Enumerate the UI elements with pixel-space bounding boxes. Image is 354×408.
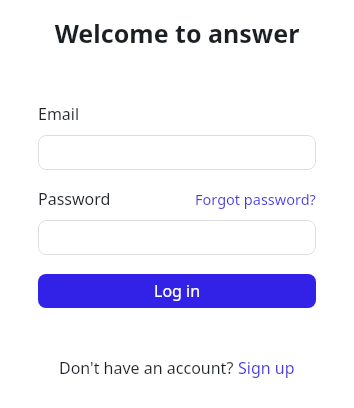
button[interactable]: Log in — [38, 274, 316, 308]
button[interactable] — [38, 220, 316, 255]
button[interactable]: Forgot password? — [195, 189, 316, 209]
staticText: Log in — [154, 280, 201, 302]
button[interactable] — [38, 135, 316, 170]
staticText: Email — [38, 103, 80, 125]
staticText: Welcome to answer — [0, 16, 354, 50]
button[interactable]: Sign up — [238, 357, 295, 379]
staticText: Password — [38, 188, 111, 210]
staticText: Don't have an account? — [59, 357, 238, 379]
